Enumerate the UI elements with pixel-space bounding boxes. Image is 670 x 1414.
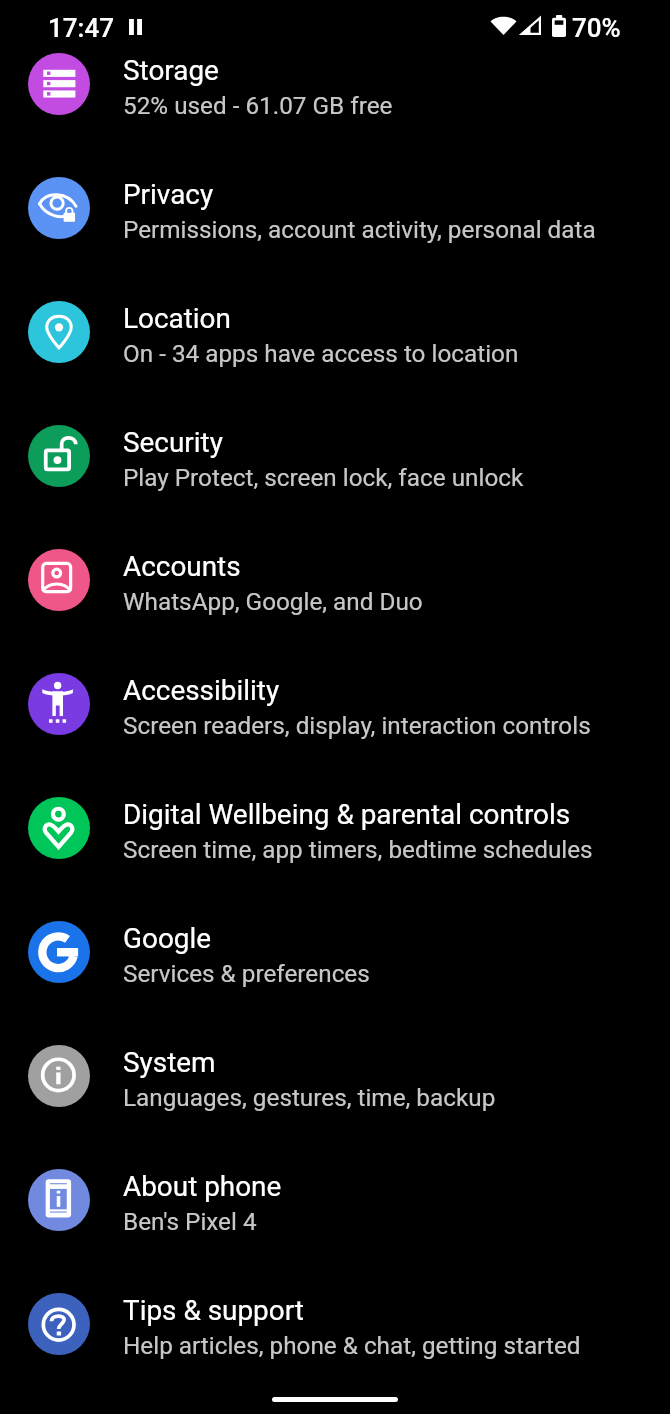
button[interactable]: Accounts <box>0 518 670 642</box>
button[interactable]: Google <box>0 890 670 1014</box>
staticText: Permissions, account activity, personal … <box>123 215 596 243</box>
staticText: On - 34 apps have access to location <box>123 339 519 367</box>
staticText: Help articles, phone & chat, getting sta… <box>123 1331 581 1359</box>
button[interactable]: Accessibility <box>0 642 670 766</box>
staticText: 70% <box>572 13 621 43</box>
staticText: Ben's Pixel 4 <box>123 1207 257 1235</box>
staticText: WhatsApp, Google, and Duo <box>123 587 423 615</box>
staticText: Services & preferences <box>123 959 370 987</box>
button[interactable]: Privacy <box>0 146 670 270</box>
staticText: About phone <box>123 1170 282 1203</box>
staticText: Google <box>123 922 212 955</box>
staticText: Tips & support <box>123 1294 304 1327</box>
staticText: Languages, gestures, time, backup <box>123 1083 496 1111</box>
staticText: Storage <box>123 54 219 87</box>
button[interactable]: Storage <box>0 22 670 146</box>
staticText: Privacy <box>123 178 214 211</box>
staticText: Digital Wellbeing & parental controls <box>123 798 571 831</box>
button[interactable]: Tips & support <box>0 1262 670 1386</box>
staticText: Play Protect, screen lock, face unlock <box>123 463 524 491</box>
staticText: Accounts <box>123 550 241 583</box>
button[interactable]: System <box>0 1014 670 1138</box>
staticText: System <box>123 1046 216 1079</box>
button[interactable]: Security <box>0 394 670 518</box>
button[interactable]: About phone <box>0 1138 670 1262</box>
staticText: Accessibility <box>123 674 280 707</box>
staticText: Screen time, app timers, bedtime schedul… <box>123 835 593 863</box>
button[interactable]: Digital Wellbeing & parental controls <box>0 766 670 890</box>
staticText: Security <box>123 426 223 459</box>
staticText: Screen readers, display, interaction con… <box>123 711 591 739</box>
staticText: 52% used - 61.07 GB free <box>123 91 393 119</box>
button[interactable]: Location <box>0 270 670 394</box>
staticText: Location <box>123 302 231 335</box>
staticText: 17:47 <box>48 13 114 43</box>
